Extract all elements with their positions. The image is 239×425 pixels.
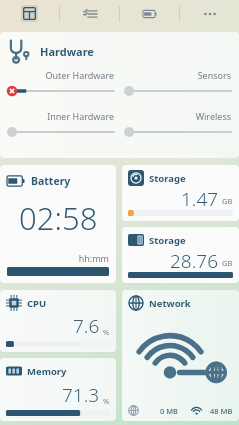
button[interactable]: More options bbox=[180, 0, 239, 27]
button[interactable]: Memory bbox=[0, 358, 116, 421]
button[interactable]: Network bbox=[122, 290, 239, 421]
button[interactable]: Storage bbox=[122, 165, 239, 221]
staticText: 0 MB bbox=[160, 406, 179, 416]
button[interactable]: Storage bbox=[122, 227, 239, 283]
staticText: Sensors bbox=[124, 69, 231, 81]
staticText: Memory bbox=[27, 365, 67, 378]
button[interactable]: Hardware bbox=[0, 32, 239, 158]
staticText: Storage bbox=[149, 172, 186, 185]
button[interactable]: CPU bbox=[0, 290, 116, 352]
staticText: % bbox=[103, 396, 110, 406]
staticText: 02:58 bbox=[19, 197, 98, 239]
staticText: % bbox=[103, 327, 110, 337]
staticText: Network bbox=[149, 297, 191, 310]
button[interactable]: Outer Hardware bbox=[7, 69, 114, 98]
button[interactable]: Wireless bbox=[124, 110, 231, 139]
staticText: Wireless bbox=[124, 110, 231, 122]
staticText: hh:mm bbox=[7, 252, 109, 264]
staticText: CPU bbox=[27, 297, 47, 310]
button[interactable]: Inner Hardware bbox=[7, 110, 114, 139]
staticText: 71.3 bbox=[62, 382, 100, 408]
staticText: 48 MB bbox=[210, 406, 233, 416]
staticText: 7.6 bbox=[73, 313, 100, 339]
button[interactable]: Battery bbox=[0, 165, 116, 283]
staticText: Hardware bbox=[40, 44, 94, 59]
staticText: Storage bbox=[149, 234, 186, 247]
staticText: Battery bbox=[31, 174, 71, 188]
staticText: GB bbox=[222, 258, 233, 268]
staticText: Outer Hardware bbox=[7, 69, 114, 81]
staticText: 28.76 bbox=[170, 248, 219, 270]
button[interactable]: Dashboard bbox=[0, 0, 59, 27]
staticText: 1.47 bbox=[181, 186, 219, 208]
button[interactable]: Sensors bbox=[124, 69, 231, 98]
button[interactable]: Tasks bbox=[60, 0, 119, 27]
staticText: GB bbox=[222, 196, 233, 206]
staticText: Inner Hardware bbox=[7, 110, 114, 122]
button[interactable]: Battery bbox=[120, 0, 179, 27]
